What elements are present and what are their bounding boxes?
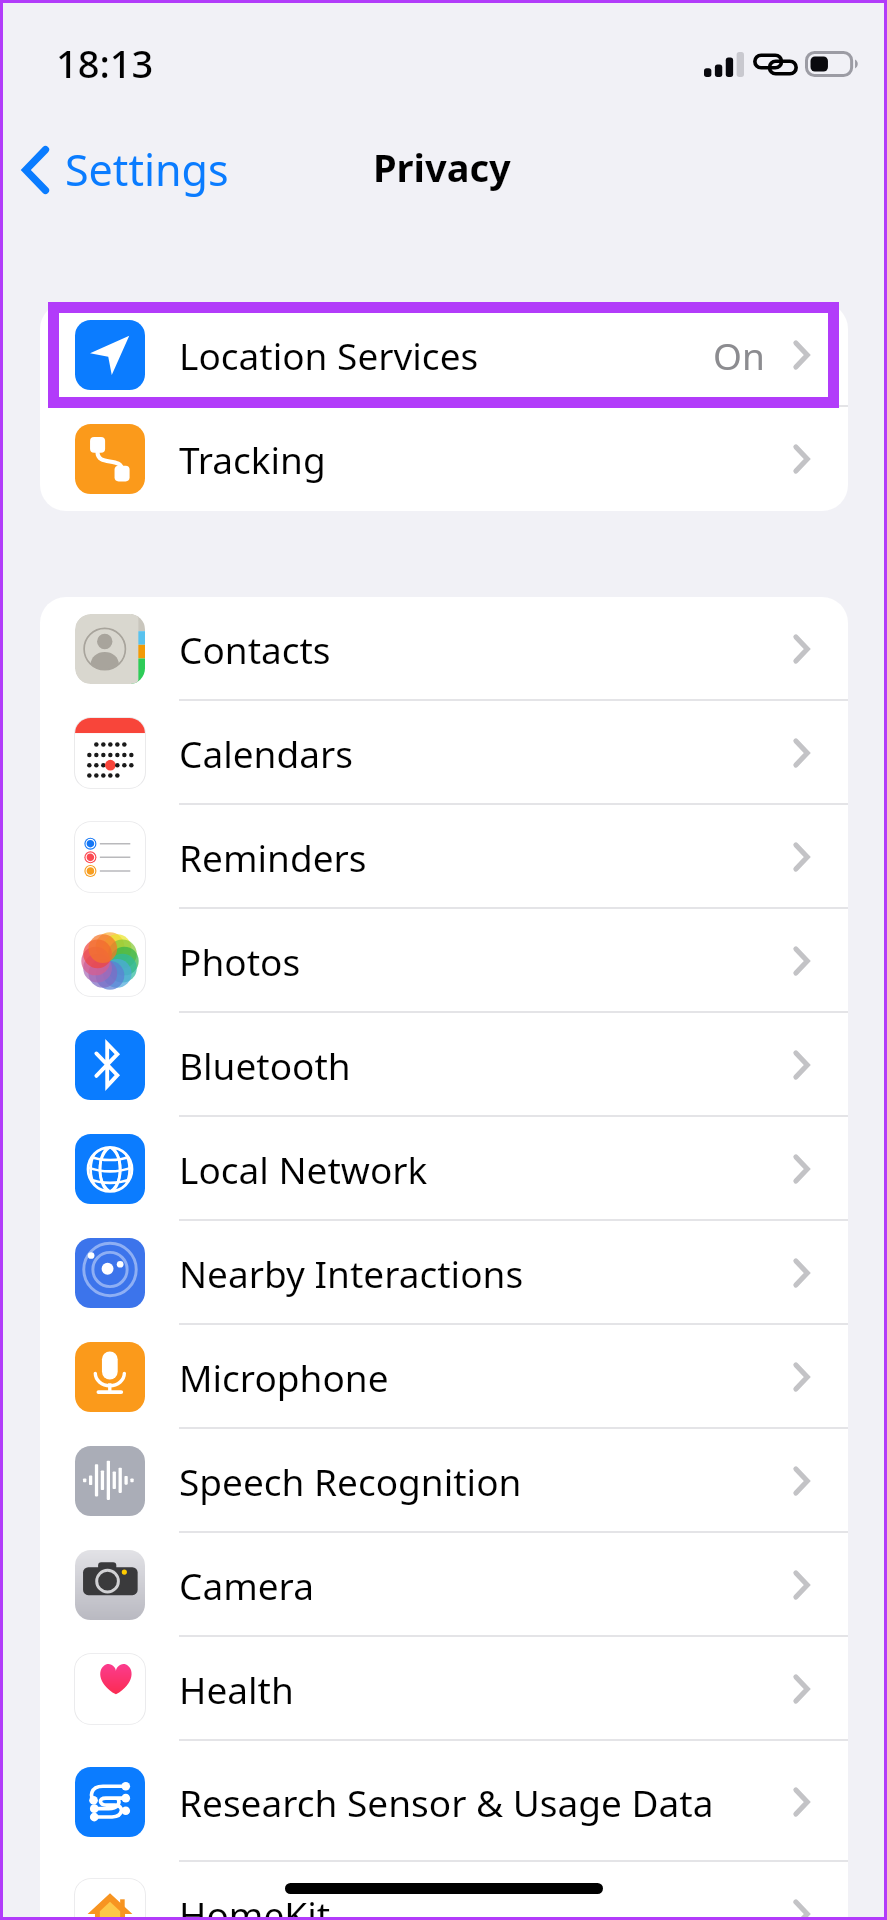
staticText: 18:13	[56, 37, 154, 89]
staticText: Location Services	[179, 330, 479, 380]
button[interactable]: Nearby Interactions	[40, 1221, 848, 1325]
button[interactable]: Camera	[40, 1533, 848, 1637]
staticText: Privacy	[373, 141, 511, 193]
staticText: Calendars	[179, 728, 353, 778]
button[interactable]: Health	[40, 1637, 848, 1741]
staticText: Bluetooth	[179, 1040, 351, 1090]
button[interactable]: Settings	[10, 132, 247, 207]
staticText: On	[713, 330, 765, 380]
staticText: Contacts	[179, 624, 331, 674]
staticText: Research Sensor & Usage Data	[179, 1777, 714, 1827]
button[interactable]: Contacts	[40, 597, 848, 701]
staticText: Settings	[65, 140, 229, 199]
staticText: Local Network	[179, 1144, 428, 1194]
button[interactable]: HomeKit	[40, 1862, 848, 1920]
staticText: Reminders	[179, 832, 367, 882]
staticText: Tracking	[179, 434, 326, 484]
button[interactable]: Calendars	[40, 701, 848, 805]
button[interactable]: Microphone	[40, 1325, 848, 1429]
button[interactable]: Speech Recognition	[40, 1429, 848, 1533]
button[interactable]: Research Sensor & Usage Data	[40, 1741, 848, 1862]
staticText: Camera	[179, 1560, 314, 1610]
button[interactable]: Reminders	[40, 805, 848, 909]
button[interactable]: Photos	[40, 909, 848, 1013]
button[interactable]: Location Services	[40, 303, 848, 407]
button[interactable]: Bluetooth	[40, 1013, 848, 1117]
staticText: Speech Recognition	[179, 1456, 522, 1506]
staticText: Microphone	[179, 1352, 389, 1402]
staticText: Photos	[179, 936, 301, 986]
button[interactable]: Local Network	[40, 1117, 848, 1221]
staticText: Nearby Interactions	[179, 1248, 524, 1298]
staticText: HomeKit	[179, 1889, 331, 1920]
staticText: Health	[179, 1664, 294, 1714]
button[interactable]: Tracking	[40, 407, 848, 511]
